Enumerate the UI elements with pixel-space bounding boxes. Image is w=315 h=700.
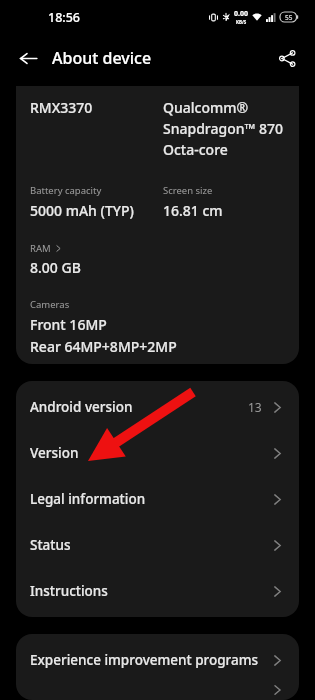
staticText: 16.81 cm	[163, 201, 223, 220]
button[interactable]: RAM	[30, 242, 63, 255]
staticText: Status	[30, 536, 270, 554]
staticText: Experience improvement programs	[30, 651, 270, 669]
button[interactable]: Experience improvement programs	[16, 637, 299, 683]
staticText: 13	[248, 399, 262, 415]
staticText: 18:56	[48, 9, 81, 26]
staticText: 0.00	[234, 9, 248, 19]
staticText: Android version	[30, 398, 248, 416]
staticText: KB/S	[236, 19, 247, 25]
staticText: 55	[285, 13, 293, 22]
staticText: 8.00 GB	[30, 258, 81, 277]
staticText: 5000 mAh (TYP)	[30, 201, 134, 220]
staticText: Snapdragon™ 870	[163, 119, 283, 138]
button[interactable]: Instructions	[16, 568, 299, 614]
staticText: Instructions	[30, 582, 270, 600]
staticText: Rear 64MP+8MP+2MP	[30, 337, 177, 356]
button[interactable]: Back	[12, 42, 44, 74]
staticText: RMX3370	[30, 98, 163, 117]
staticText: Battery capacity	[30, 184, 102, 197]
button[interactable]: Android version	[16, 384, 299, 430]
button[interactable]: Legal information	[16, 476, 299, 522]
staticText: Version	[30, 444, 270, 462]
staticText: Cameras	[30, 298, 70, 311]
staticText: Screen size	[163, 184, 213, 197]
button[interactable]: Share	[270, 41, 304, 75]
button[interactable]: Status	[16, 522, 299, 568]
staticText: Qualcomm®	[163, 98, 249, 117]
button[interactable]	[16, 683, 299, 697]
staticText: About device	[52, 47, 152, 69]
staticText: Legal information	[30, 490, 270, 508]
staticText: Octa-core	[163, 140, 228, 159]
button[interactable]: Version	[16, 430, 299, 476]
staticText: RAM	[30, 242, 51, 255]
staticText: Front 16MP	[30, 315, 107, 334]
